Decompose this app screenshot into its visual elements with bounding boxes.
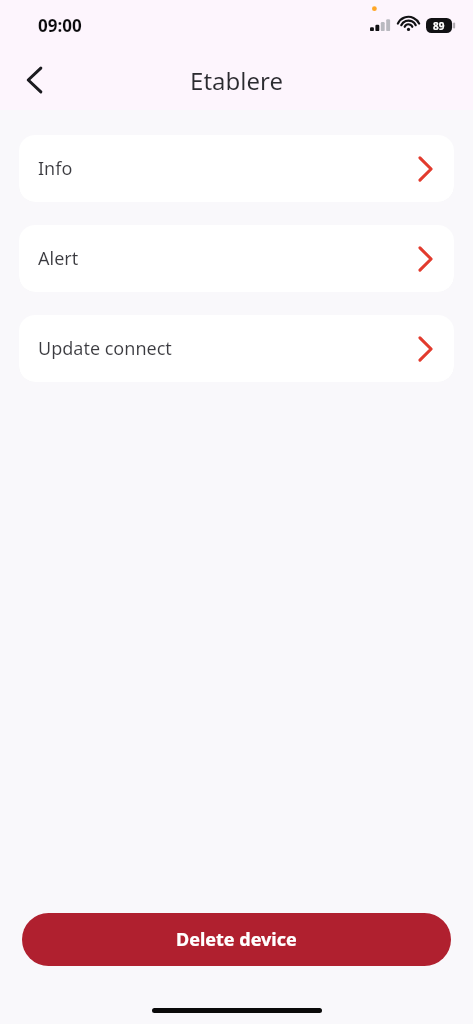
button[interactable]: Info xyxy=(19,135,454,202)
staticText: Alert xyxy=(38,246,79,271)
staticText: 09:00 xyxy=(38,14,82,37)
staticText: Info xyxy=(38,156,73,181)
staticText: Delete device xyxy=(176,927,297,952)
staticText: Update connect xyxy=(38,336,172,361)
button[interactable]: Alert xyxy=(19,225,454,292)
staticText: 89 xyxy=(433,19,445,33)
button[interactable]: Back xyxy=(12,58,56,102)
staticText: Etablere xyxy=(190,64,283,97)
button[interactable]: Update connect xyxy=(19,315,454,382)
button[interactable]: Delete device xyxy=(22,913,451,966)
